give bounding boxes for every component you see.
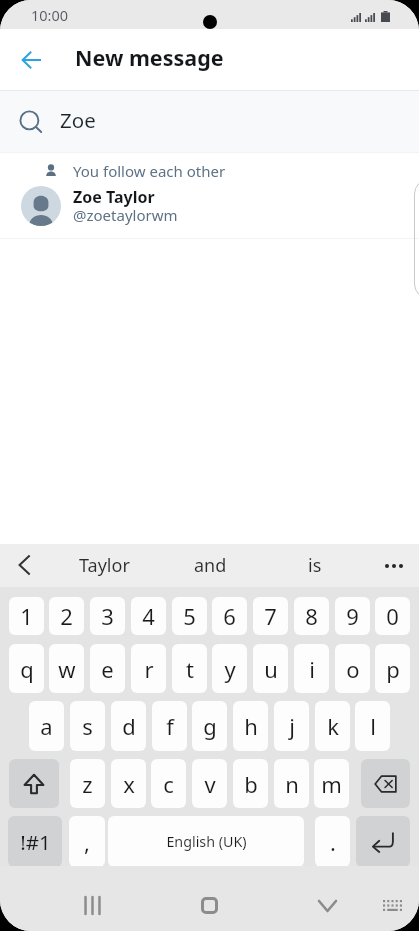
staticText: n xyxy=(285,769,299,799)
staticText: Zoe xyxy=(60,106,96,134)
button[interactable]: 2 xyxy=(49,597,84,635)
button[interactable]: You follow each other xyxy=(0,153,419,239)
staticText: 7 xyxy=(264,601,277,631)
staticText: k xyxy=(327,711,339,741)
button[interactable]: w xyxy=(49,644,84,693)
staticText: f xyxy=(166,711,174,741)
button[interactable]: 1 xyxy=(9,597,44,635)
button[interactable]: English (UK) xyxy=(108,816,304,867)
button[interactable]: y xyxy=(212,644,247,693)
button[interactable]: More options xyxy=(375,544,413,587)
staticText: a xyxy=(40,711,53,741)
staticText: Zoe Taylor xyxy=(73,186,155,208)
button[interactable]: s xyxy=(70,701,105,751)
staticText: h xyxy=(244,711,258,741)
staticText: and xyxy=(194,553,227,578)
staticText: g xyxy=(203,711,217,741)
button[interactable]: l xyxy=(355,701,390,751)
staticText: . xyxy=(330,827,336,857)
staticText: , xyxy=(84,827,90,857)
button[interactable]: 3 xyxy=(90,597,125,635)
staticText: j xyxy=(289,711,295,741)
staticText: q xyxy=(20,654,34,684)
button[interactable]: Home xyxy=(189,885,230,926)
button[interactable]: i xyxy=(294,644,329,693)
button[interactable]: g xyxy=(192,701,227,751)
button[interactable]: 9 xyxy=(335,597,370,635)
staticText: l xyxy=(370,711,376,741)
staticText: 6 xyxy=(223,601,236,631)
button[interactable]: Back xyxy=(10,39,52,81)
button[interactable]: j xyxy=(274,701,309,751)
button[interactable]: 6 xyxy=(212,597,247,635)
button[interactable]: Zoe xyxy=(0,90,419,153)
staticText: m xyxy=(321,769,342,799)
staticText: d xyxy=(122,711,136,741)
button[interactable]: f xyxy=(152,701,187,751)
staticText: t xyxy=(186,654,194,684)
staticText: e xyxy=(101,654,114,684)
staticText: x xyxy=(123,769,135,799)
staticText: 9 xyxy=(346,601,359,631)
button[interactable]: x xyxy=(111,759,146,808)
staticText: 0 xyxy=(386,601,399,631)
staticText: r xyxy=(144,654,154,684)
button[interactable]: b xyxy=(233,759,268,808)
button[interactable]: Hide keyboard xyxy=(307,885,348,926)
staticText: 3 xyxy=(101,601,114,631)
staticText: z xyxy=(82,769,93,799)
staticText: w xyxy=(58,654,76,684)
button[interactable]: c xyxy=(151,759,186,808)
button[interactable]: Switch keyboard xyxy=(372,885,413,926)
staticText: v xyxy=(204,769,216,799)
button[interactable]: u xyxy=(253,644,288,693)
button[interactable]: a xyxy=(29,701,64,751)
staticText: u xyxy=(264,654,278,684)
button[interactable]: e xyxy=(90,644,125,693)
button[interactable]: o xyxy=(335,644,370,693)
staticText: @zoetaylorwm xyxy=(73,205,178,225)
staticText: is xyxy=(308,553,322,578)
button[interactable]: Previous suggestions xyxy=(5,546,43,584)
button[interactable]: p xyxy=(375,644,410,693)
button[interactable]: 7 xyxy=(253,597,288,635)
staticText: 8 xyxy=(305,601,318,631)
staticText: y xyxy=(224,654,236,684)
staticText: i xyxy=(309,654,315,684)
button[interactable]: h xyxy=(233,701,268,751)
staticText: b xyxy=(244,769,258,799)
button[interactable]: !#1 xyxy=(8,816,62,867)
staticText: s xyxy=(82,711,93,741)
button[interactable]: Enter xyxy=(356,816,410,867)
staticText: o xyxy=(346,654,360,684)
button[interactable]: Backspace xyxy=(361,759,410,808)
staticText: 4 xyxy=(142,601,155,631)
button[interactable]: 4 xyxy=(131,597,166,635)
staticText: !#1 xyxy=(20,828,51,856)
button[interactable]: Recents xyxy=(72,885,113,926)
button[interactable]: v xyxy=(192,759,227,808)
staticText: 5 xyxy=(183,601,196,631)
button[interactable]: Shift xyxy=(9,759,59,808)
button[interactable]: z xyxy=(70,759,105,808)
staticText: New message xyxy=(75,43,224,72)
button[interactable]: d xyxy=(111,701,146,751)
staticText: 1 xyxy=(20,601,33,631)
button[interactable]: 0 xyxy=(375,597,410,635)
button[interactable]: t xyxy=(172,644,207,693)
staticText: 2 xyxy=(60,601,73,631)
button[interactable]: , xyxy=(69,816,105,867)
staticText: Taylor xyxy=(79,553,130,578)
button[interactable]: 8 xyxy=(294,597,329,635)
other: Shift xyxy=(24,774,44,794)
button[interactable]: k xyxy=(315,701,350,751)
other: Backspace xyxy=(374,775,397,793)
button[interactable]: q xyxy=(9,644,44,693)
staticText: You follow each other xyxy=(73,161,226,181)
staticText: 10:00 xyxy=(31,5,69,25)
button[interactable]: m xyxy=(314,759,349,808)
button[interactable]: 5 xyxy=(172,597,207,635)
button[interactable]: . xyxy=(315,816,350,867)
button[interactable]: r xyxy=(131,644,166,693)
button[interactable]: n xyxy=(274,759,309,808)
